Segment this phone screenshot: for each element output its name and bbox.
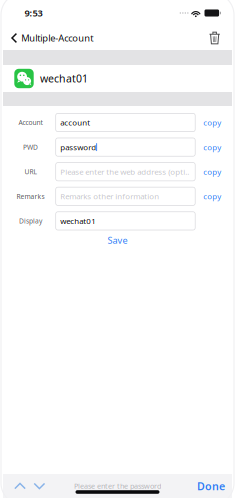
staticText: account: [60, 117, 90, 128]
staticText: 9:53: [24, 7, 42, 19]
button[interactable]: Next field: [30, 474, 49, 498]
staticText: URL: [24, 167, 36, 176]
button[interactable]: Delete: [200, 26, 232, 50]
button[interactable]: copy: [195, 113, 229, 132]
staticText: Multiple-Account: [21, 32, 93, 44]
button[interactable]: copy: [195, 138, 229, 156]
staticText: wechat01: [60, 215, 96, 226]
button[interactable]: copy: [195, 187, 229, 205]
button[interactable]: wechat01: [3, 65, 232, 92]
staticText: Remarks other information: [60, 191, 159, 202]
staticText: wechat01: [40, 71, 88, 86]
button[interactable]: Multiple-Account: [3, 26, 99, 50]
staticText: Display: [19, 216, 42, 225]
button[interactable]: Previous field: [10, 474, 30, 498]
button[interactable]: Save: [94, 233, 140, 247]
staticText: Remarks: [16, 192, 44, 201]
staticText: copy: [203, 191, 221, 202]
staticText: Please enter the password: [74, 481, 161, 491]
staticText: Account: [18, 118, 42, 127]
button[interactable]: copy: [195, 163, 229, 181]
staticText: copy: [203, 117, 221, 128]
staticText: Save: [107, 234, 127, 246]
staticText: copy: [203, 166, 221, 177]
staticText: password: [60, 142, 96, 152]
button[interactable]: Done: [197, 474, 225, 498]
staticText: Please enter the web address (opti..: [60, 166, 189, 177]
staticText: Done: [197, 479, 225, 493]
staticText: copy: [203, 142, 221, 152]
staticText: PWD: [23, 143, 38, 152]
